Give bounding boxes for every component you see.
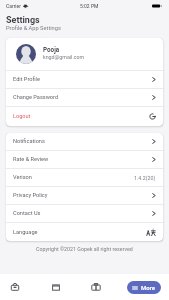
- other: Language: [146, 228, 157, 237]
- staticText: Verison: [13, 174, 32, 181]
- button[interactable]: Pooja: [6, 38, 163, 70]
- button[interactable]: Contact Us: [6, 205, 163, 222]
- other: Logout: [149, 113, 156, 120]
- button[interactable]: More: [127, 281, 161, 294]
- staticText: kngd@gmail.com: [43, 54, 85, 60]
- staticText: Profile & App Settings: [6, 25, 61, 32]
- button[interactable]: Notifications: [6, 133, 163, 150]
- staticText: 1.4.2(20): [134, 175, 156, 181]
- staticText: Language: [13, 229, 38, 236]
- staticText: More: [141, 284, 155, 291]
- staticText: Pooja: [43, 46, 60, 53]
- staticText: Privacy Policy: [13, 192, 48, 199]
- button[interactable]: Rate & Review: [6, 151, 163, 168]
- button[interactable]: Jobs: [87, 278, 105, 296]
- button[interactable]: Edit Profile: [6, 71, 163, 88]
- staticText: Notifications: [13, 138, 45, 145]
- staticText: Rate & Review: [13, 156, 49, 163]
- staticText: Change Password: [13, 94, 59, 101]
- button[interactable]: Verison: [6, 169, 163, 186]
- button[interactable]: Store: [47, 278, 65, 296]
- staticText: Settings: [6, 15, 40, 26]
- staticText: Contact Us: [13, 210, 41, 217]
- button[interactable]: Logout: [6, 107, 163, 126]
- button[interactable]: Change Password: [6, 89, 163, 106]
- button[interactable]: Orders: [6, 278, 24, 296]
- button[interactable]: Privacy Policy: [6, 187, 163, 204]
- staticText: Edit Profile: [13, 76, 40, 83]
- staticText: Copyright ©2021 Gopek all right reserved: [36, 246, 133, 252]
- button[interactable]: Language: [6, 223, 163, 241]
- staticText: Carrier: [6, 3, 21, 9]
- staticText: 5:02 PM: [80, 3, 99, 9]
- staticText: Logout: [13, 113, 31, 120]
